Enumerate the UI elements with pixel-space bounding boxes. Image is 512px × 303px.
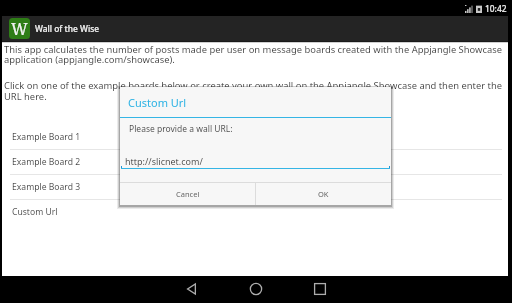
button[interactable]: Example Board 1: [2, 125, 508, 150]
staticText: http://slicnet.com/: [125, 155, 203, 167]
button[interactable]: Custom Url: [2, 200, 508, 225]
button[interactable]: App icon: [9, 18, 30, 39]
staticText: W: [11, 18, 28, 39]
staticText: Example Board 1: [12, 131, 81, 143]
staticText: Click on one of the example boards below…: [4, 79, 505, 102]
staticText: Example Board 2: [12, 156, 81, 168]
staticText: Cancel: [176, 189, 200, 199]
staticText: Custom Url: [128, 95, 187, 110]
staticText: Please provide a wall URL:: [129, 123, 233, 135]
staticText: 10:42: [485, 3, 507, 14]
staticText: This app calculates the number of posts …: [4, 43, 505, 66]
button[interactable]: Home: [224, 276, 288, 303]
button[interactable]: Example Board 3: [2, 175, 508, 200]
button[interactable]: Recent apps: [288, 276, 352, 303]
staticText: OK: [318, 189, 329, 199]
button[interactable]: Back: [160, 276, 224, 303]
button[interactable]: OK: [256, 183, 391, 205]
button[interactable]: Cancel: [120, 183, 255, 205]
staticText: Example Board 3: [12, 181, 81, 193]
staticText: Custom Url: [12, 206, 58, 218]
button[interactable]: Example Board 2: [2, 150, 508, 175]
staticText: Wall of the Wise: [35, 23, 100, 34]
